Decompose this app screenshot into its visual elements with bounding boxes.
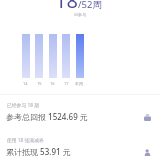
staticText: 已参与	[0, 12, 160, 17]
staticText: /52周	[78, 0, 102, 11]
staticText: 累计抵现 53.91 元	[6, 146, 71, 157]
staticText: 已经参与 18 期	[7, 102, 39, 109]
staticText: 15	[37, 81, 42, 86]
button[interactable]: 查看参考总回报详情	[0, 101, 160, 124]
staticText: 18	[55, 0, 78, 14]
button[interactable]: 查看累计抵现详情	[0, 136, 160, 159]
staticText: 16	[50, 81, 55, 86]
staticText: 本周	[75, 81, 83, 86]
staticText: 使用 18 张满减券	[7, 137, 44, 144]
staticText: 参考总回报 1524.69 元	[6, 111, 88, 122]
staticText: 14	[23, 81, 28, 86]
staticText: 17	[64, 81, 69, 86]
